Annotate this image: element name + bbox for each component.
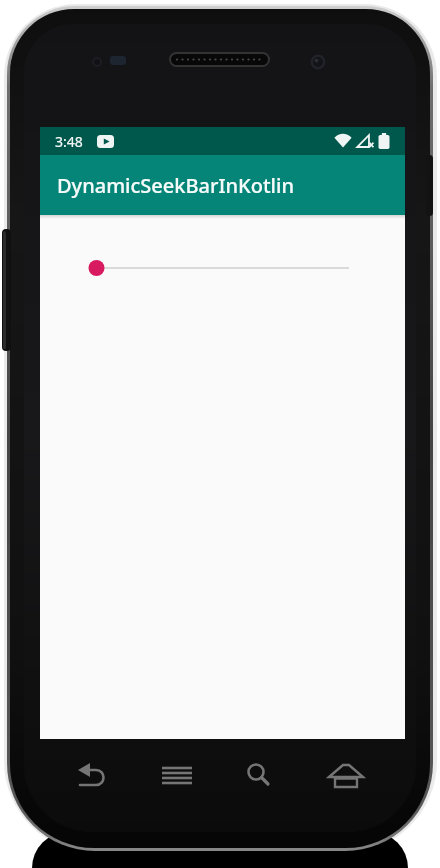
button[interactable]: DynamicSeekBarInKotlin [40,155,405,215]
button[interactable] [240,757,276,793]
staticText: DynamicSeekBarInKotlin [57,172,294,199]
button[interactable] [75,758,111,794]
button[interactable] [82,260,349,276]
staticText: 3:48 [55,132,83,151]
button[interactable] [328,758,364,794]
button[interactable] [159,758,195,794]
